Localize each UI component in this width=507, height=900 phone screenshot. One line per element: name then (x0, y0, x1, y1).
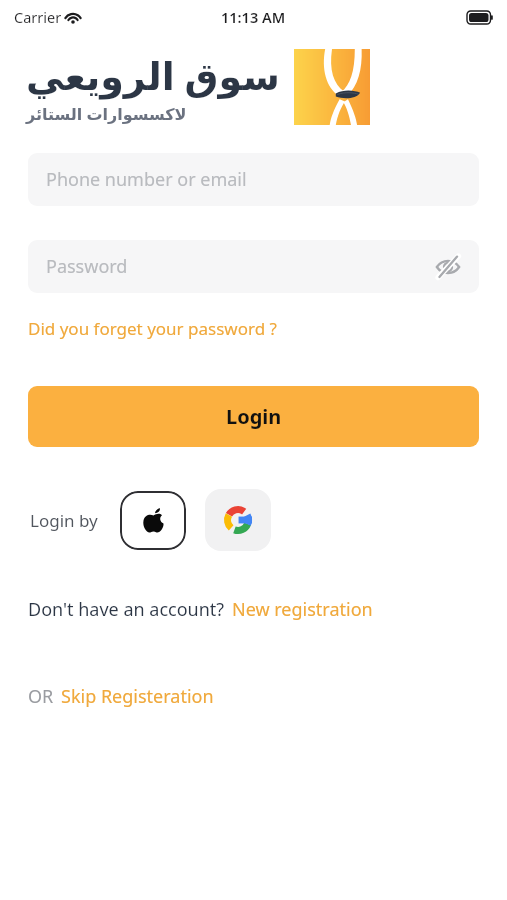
staticText: Did you forget your password ? (28, 317, 277, 340)
staticText: 11:13 AM (221, 7, 286, 27)
staticText: New registration (232, 597, 373, 622)
button[interactable]: Login (28, 386, 479, 447)
button[interactable]: Skip Registeration (61, 684, 214, 709)
button[interactable]: Show password (429, 248, 467, 286)
button[interactable]: Did you forget your password ? (28, 317, 277, 340)
staticText: سوق الرويعي (26, 49, 280, 101)
staticText: Password (46, 254, 128, 279)
staticText: Login (226, 403, 282, 430)
staticText: OR (28, 684, 54, 709)
staticText: Carrier (14, 7, 62, 27)
staticText: Phone number or email (46, 167, 247, 192)
staticText: لاكسسوارات الستائر (26, 103, 187, 125)
staticText: Login by (30, 509, 98, 532)
staticText: Don't have an account? (28, 597, 225, 622)
button[interactable]: Password (28, 240, 479, 293)
button[interactable]: New registration (232, 597, 373, 622)
staticText: Skip Registeration (61, 684, 214, 709)
button[interactable]: Phone number or email (28, 153, 479, 206)
button[interactable]: Login with Google (205, 489, 271, 551)
button[interactable]: Login with Apple (120, 491, 186, 550)
